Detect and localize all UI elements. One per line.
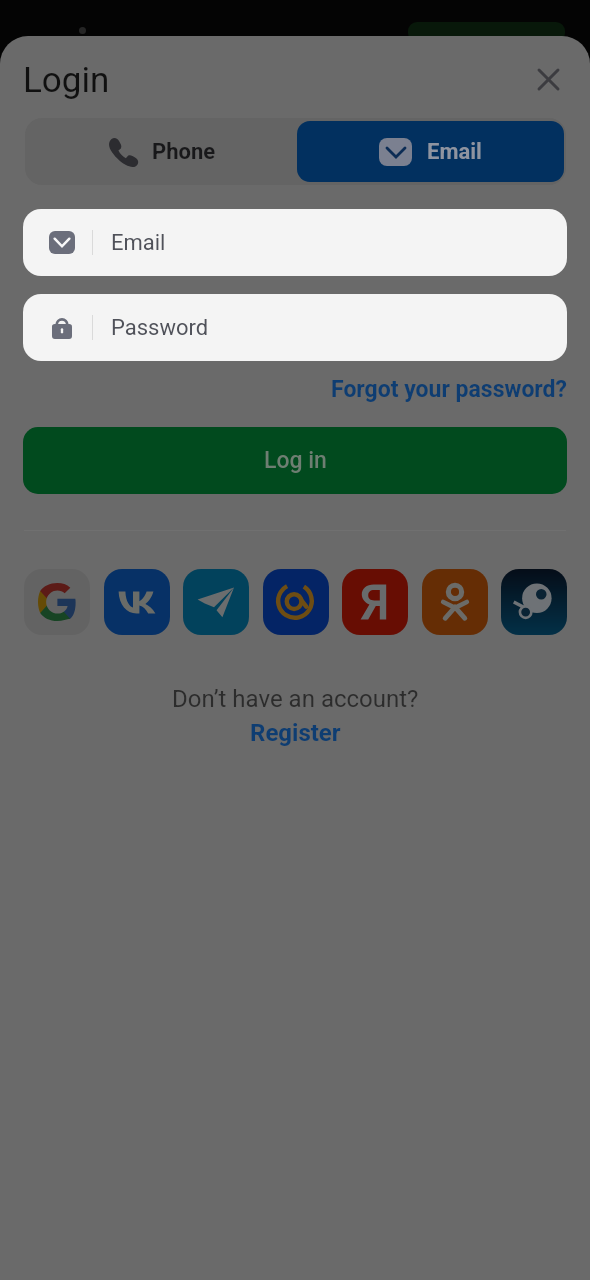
staticText: Login bbox=[23, 60, 110, 101]
button[interactable]: Phone bbox=[25, 118, 297, 185]
button[interactable]: Sign in with Yandex bbox=[342, 569, 408, 635]
button[interactable]: Log in bbox=[23, 427, 567, 494]
staticText: Log in bbox=[264, 447, 327, 474]
button[interactable]: Register bbox=[250, 719, 341, 747]
staticText: Forgot your password? bbox=[331, 376, 567, 403]
button[interactable]: Sign in with VK bbox=[104, 569, 170, 635]
staticText: Email bbox=[111, 230, 166, 256]
staticText: Don’t have an account? bbox=[172, 685, 419, 713]
button[interactable]: Sign in with Telegram bbox=[183, 569, 249, 635]
button[interactable]: Close bbox=[530, 61, 566, 97]
staticText: Email bbox=[427, 139, 482, 165]
staticText: Register bbox=[250, 719, 341, 747]
button[interactable]: Password bbox=[23, 294, 567, 361]
button[interactable]: Sign in with Mail.ru bbox=[263, 569, 329, 635]
button[interactable]: Email bbox=[297, 121, 564, 182]
button[interactable]: Sign in with Odnoklassniki bbox=[422, 569, 488, 635]
button[interactable]: Forgot your password? bbox=[300, 373, 567, 405]
staticText: Phone bbox=[152, 139, 216, 165]
button[interactable]: Email bbox=[23, 209, 567, 276]
button[interactable]: Sign in with Steam bbox=[501, 569, 567, 635]
staticText: Password bbox=[111, 315, 209, 341]
button[interactable]: Sign in with Google bbox=[24, 569, 90, 635]
